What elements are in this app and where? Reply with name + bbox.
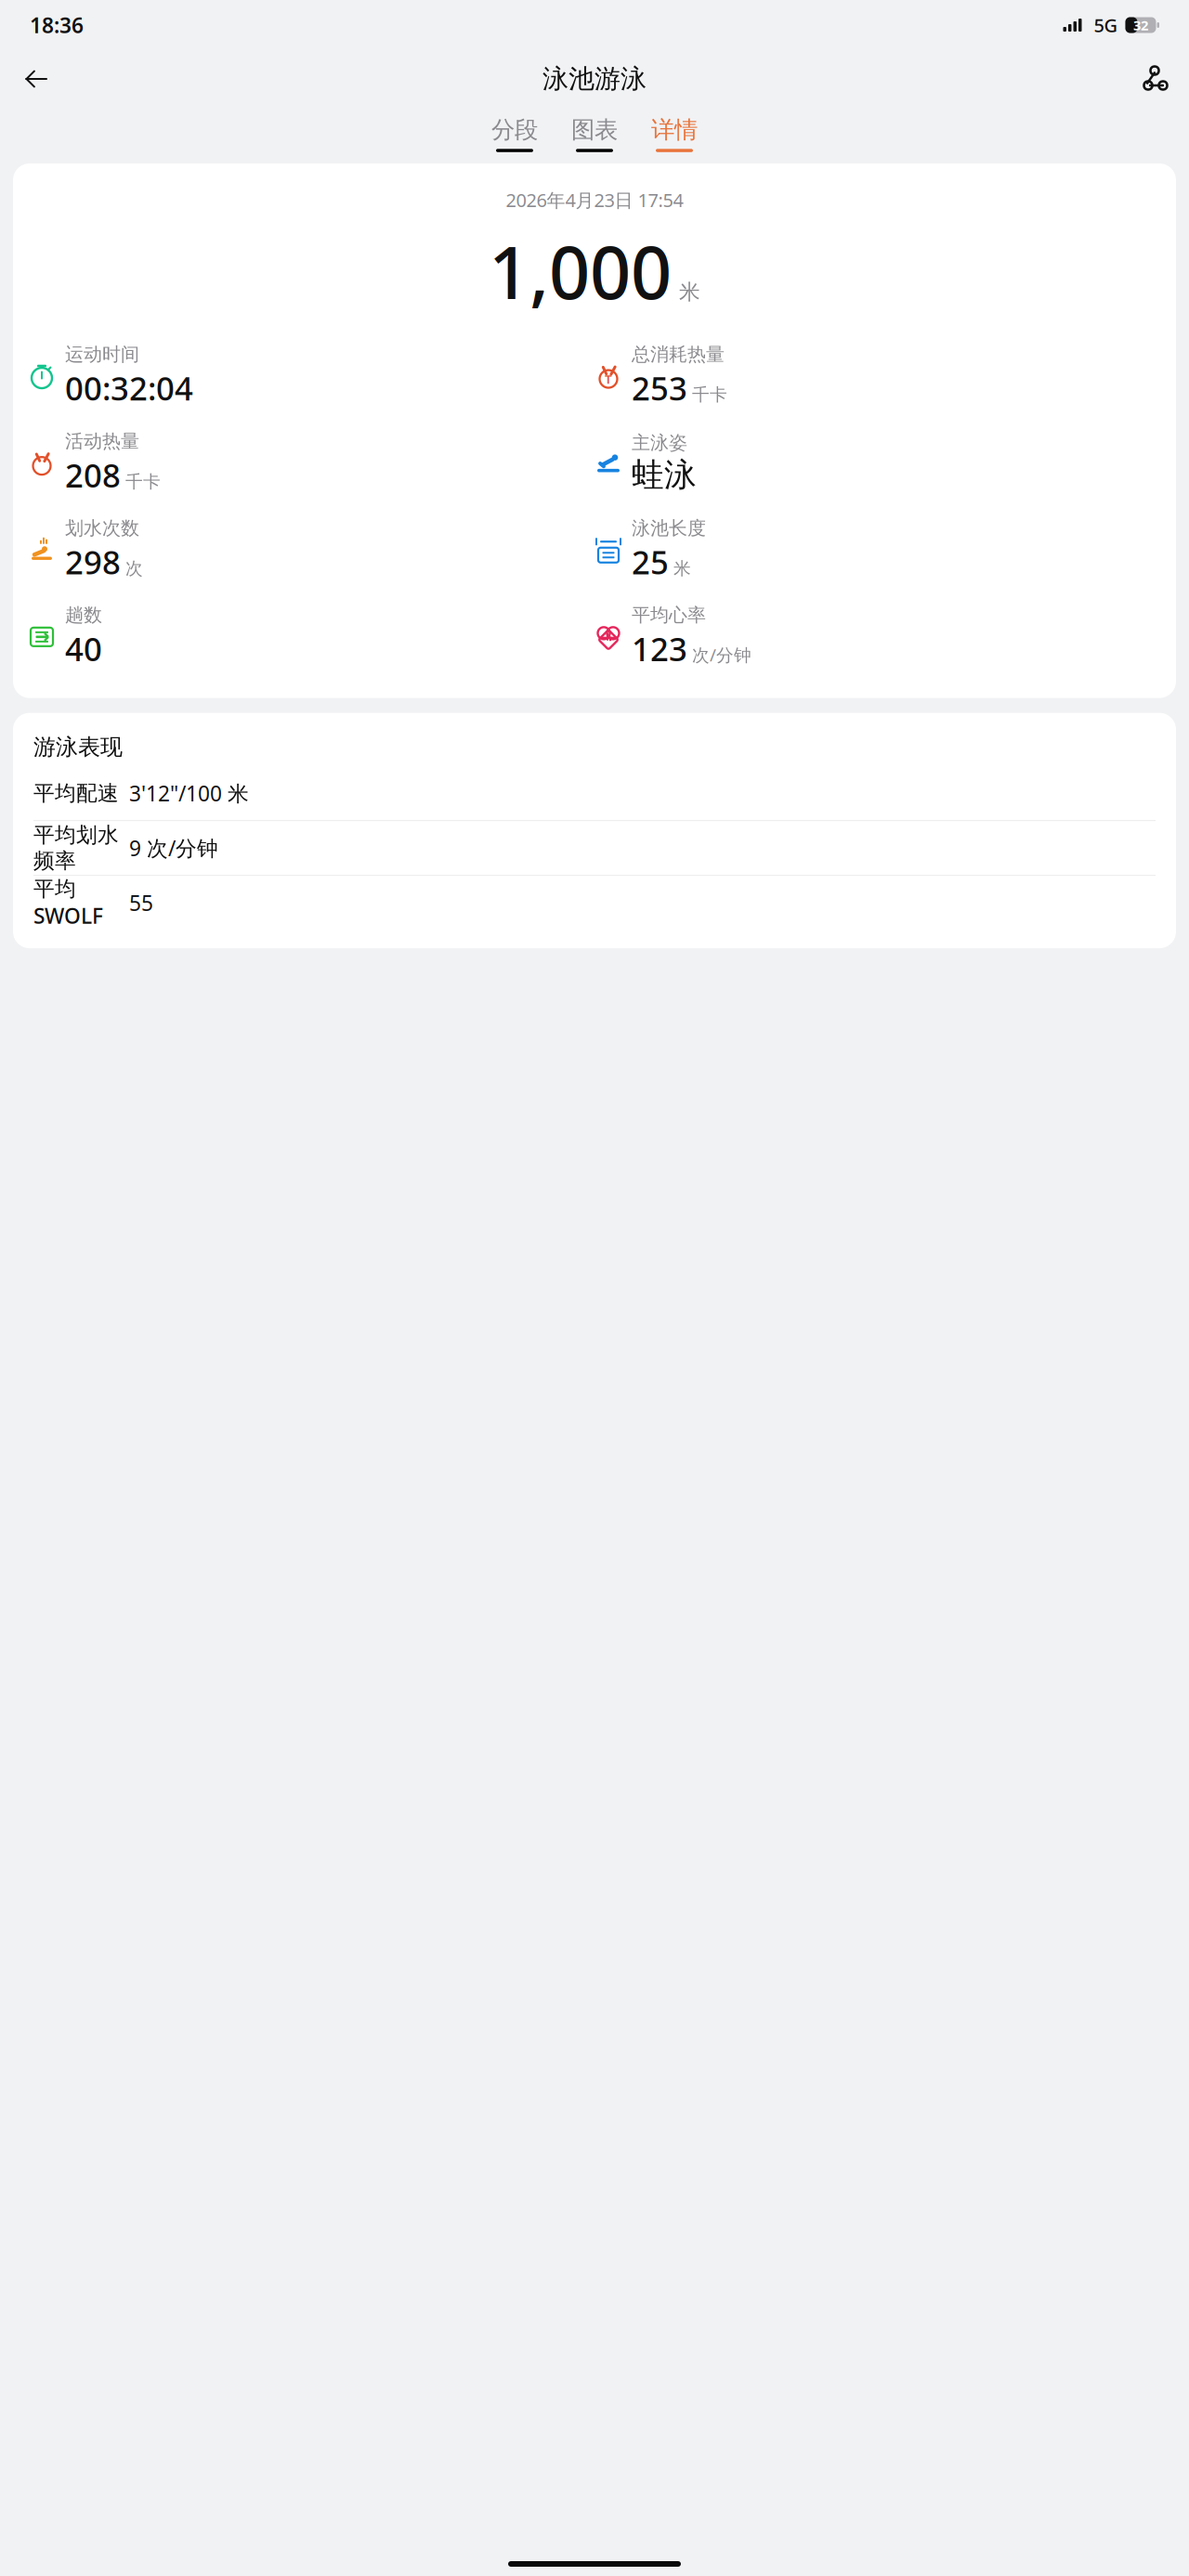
- staticText: 次: [125, 558, 143, 579]
- staticText: 划水次数: [65, 517, 139, 540]
- staticText: 2026年4月23日 17:54: [506, 188, 683, 212]
- staticText: 分段: [491, 115, 538, 144]
- staticText: 泳池游泳: [542, 63, 647, 95]
- staticText: 平均划水频率: [33, 822, 119, 874]
- staticText: 253: [632, 367, 687, 409]
- staticText: 主泳姿: [632, 431, 687, 454]
- button[interactable]: 图表: [566, 110, 623, 158]
- button[interactable]: 返回: [15, 58, 58, 100]
- button[interactable]: 分享: [1131, 58, 1174, 100]
- staticText: 平均配速: [33, 780, 119, 806]
- staticText: 平均心率: [632, 604, 706, 627]
- staticText: 3'12"/100 米: [129, 779, 249, 807]
- staticText: 千卡: [692, 384, 727, 405]
- staticText: T: [605, 371, 612, 387]
- staticText: 18:36: [30, 11, 84, 39]
- staticText: 00:32:04: [65, 367, 193, 409]
- staticText: 总消耗热量: [632, 343, 725, 366]
- staticText: 详情: [651, 115, 698, 144]
- staticText: 5G: [1094, 13, 1118, 37]
- button[interactable]: 详情: [646, 110, 703, 158]
- staticText: 208: [65, 454, 121, 496]
- staticText: 1,000: [489, 223, 672, 319]
- staticText: 123: [632, 627, 687, 670]
- staticText: 运动时间: [65, 343, 139, 366]
- staticText: 298: [65, 540, 121, 583]
- staticText: 活动热量: [65, 430, 139, 453]
- staticText: 55: [129, 889, 153, 917]
- staticText: 米: [673, 558, 691, 579]
- staticText: 米: [679, 279, 700, 305]
- staticText: 32: [1133, 16, 1148, 34]
- staticText: 25: [632, 540, 669, 583]
- staticText: 40: [65, 627, 102, 670]
- staticText: 千卡: [125, 471, 161, 492]
- button[interactable]: 分段: [486, 110, 543, 158]
- staticText: 趟数: [65, 604, 102, 627]
- staticText: 蛙泳: [632, 455, 697, 495]
- staticText: 游泳表现: [33, 733, 123, 761]
- staticText: 次/分钟: [692, 643, 751, 666]
- staticText: 平均SWOLF: [33, 876, 103, 930]
- staticText: 9 次/分钟: [129, 834, 218, 862]
- staticText: 泳池长度: [632, 517, 706, 540]
- staticText: 图表: [571, 115, 618, 144]
